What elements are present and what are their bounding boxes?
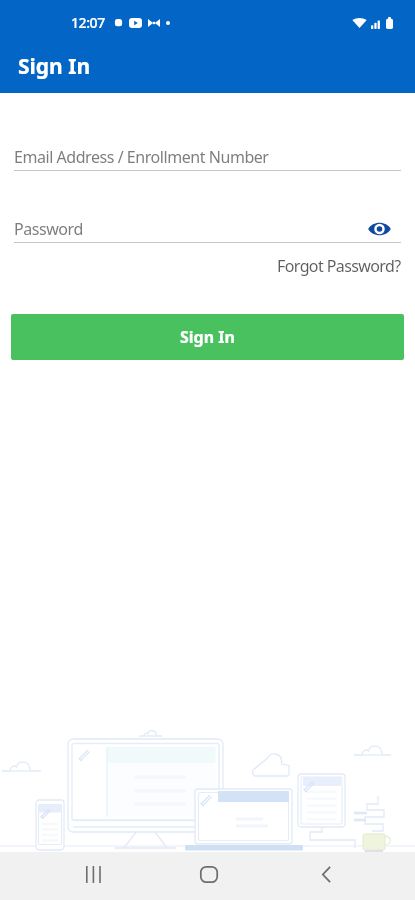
button[interactable]: Back: [302, 850, 350, 898]
staticText: Sign In: [18, 52, 91, 81]
button[interactable]: Password: [14, 216, 401, 243]
button[interactable]: Forgot Password?: [275, 251, 403, 281]
button[interactable]: Home: [185, 850, 233, 898]
button[interactable]: Sign In: [11, 314, 404, 360]
staticText: 12:07: [71, 13, 105, 32]
staticText: Sign In: [180, 326, 235, 348]
staticText: Password: [14, 218, 83, 240]
button[interactable]: Email Address / Enrollment Number: [14, 144, 401, 171]
staticText: Email Address / Enrollment Number: [14, 146, 269, 168]
staticText: Forgot Password?: [277, 255, 401, 277]
button[interactable]: Recents: [69, 850, 117, 898]
button[interactable]: Show password: [366, 216, 392, 241]
